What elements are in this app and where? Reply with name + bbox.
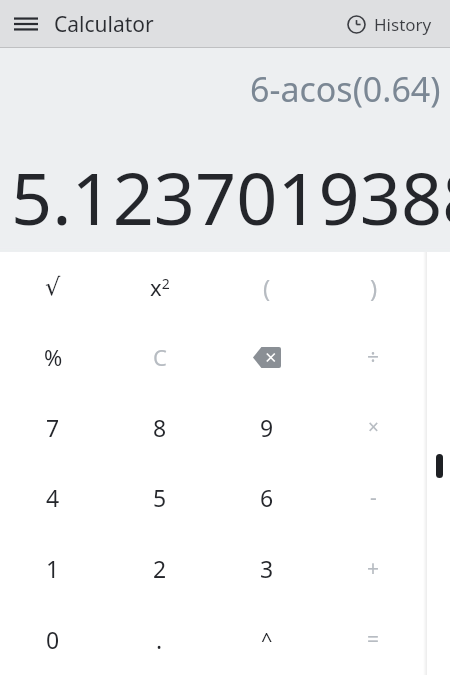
button[interactable]: Menu [14,9,44,39]
staticText: - [370,483,377,512]
staticText: 9 [260,412,274,443]
button[interactable]: 6 [213,462,320,533]
staticText: 0 [46,624,60,655]
staticText: 1 [46,553,60,584]
staticText: 5.12370193883 [11,148,450,246]
button[interactable]: √ [0,252,106,322]
staticText: + [367,554,380,583]
button[interactable]: 8 [106,392,213,462]
staticText: × [368,414,379,440]
button[interactable]: = [320,604,427,675]
staticText: ^ [261,626,273,653]
staticText: 6-acos(0.64) [250,66,441,112]
button[interactable]: 9 [213,392,320,462]
staticText: 8 [153,412,167,443]
staticText: C [153,342,167,372]
button[interactable]: x2 [106,252,213,322]
button[interactable]: × [320,392,427,462]
staticText: History [374,13,432,36]
button[interactable]: ( [213,252,320,322]
button[interactable]: + [320,533,427,604]
staticText: ) [370,271,378,304]
button[interactable]: Resize panel [436,454,443,478]
staticText: . [156,624,163,655]
staticText: 5 [153,482,167,513]
button[interactable]: 4 [0,462,106,533]
button[interactable]: 0 [0,604,106,675]
button[interactable]: C [106,322,213,392]
staticText: 6 [260,482,274,513]
button[interactable]: 1 [0,533,106,604]
staticText: 4 [46,482,60,513]
button[interactable]: Backspace [213,322,320,392]
button[interactable]: 2 [106,533,213,604]
staticText: % [44,342,63,372]
button[interactable]: ^ [213,604,320,675]
staticText: x2 [150,272,170,302]
staticText: 3 [260,553,274,584]
button[interactable]: 3 [213,533,320,604]
staticText: ÷ [367,343,380,372]
button[interactable]: - [320,462,427,533]
staticText: ( [263,271,271,304]
button[interactable]: ) [320,252,427,322]
staticText: √ [45,273,61,301]
staticText: Calculator [54,10,154,39]
button[interactable]: 7 [0,392,106,462]
button[interactable]: 5 [106,462,213,533]
button[interactable]: . [106,604,213,675]
button[interactable]: History [345,9,434,40]
button[interactable]: ÷ [320,322,427,392]
button[interactable]: % [0,322,106,392]
staticText: 7 [46,412,60,443]
staticText: = [367,625,380,654]
staticText: 2 [153,553,167,584]
